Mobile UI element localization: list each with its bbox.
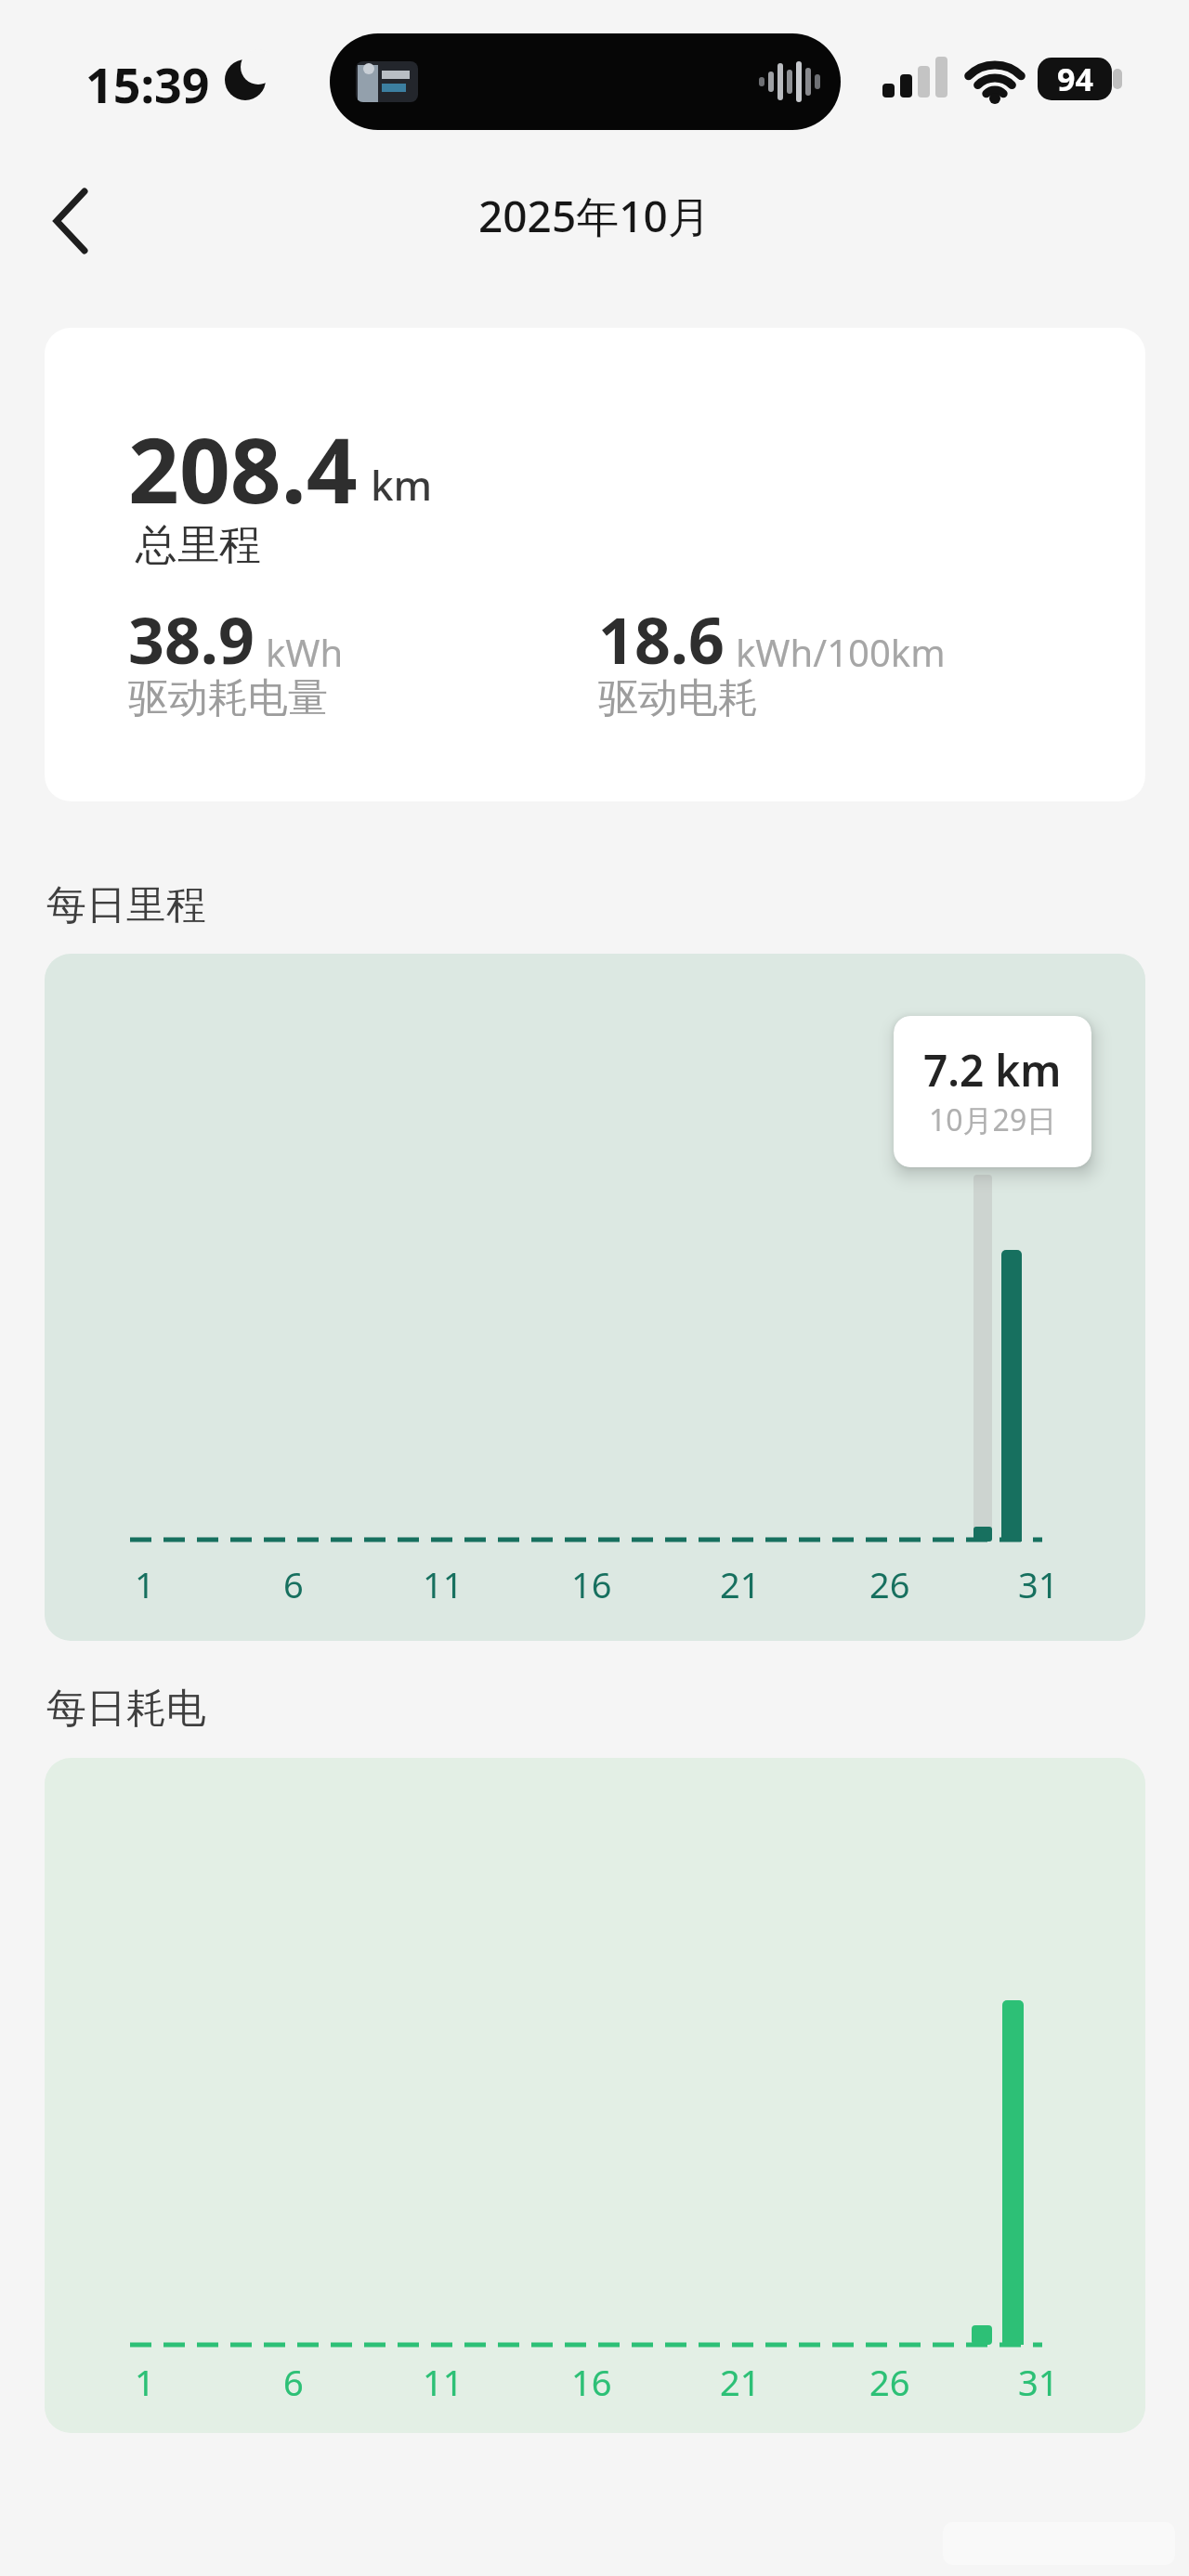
staticText: 总里程 <box>136 519 261 572</box>
staticText: 11 <box>423 2358 464 2406</box>
staticText: 驱动电耗 <box>598 673 758 723</box>
button[interactable]: 1 <box>45 954 1145 1641</box>
staticText: 6 <box>283 2358 304 2406</box>
staticText: 每日里程 <box>46 880 206 930</box>
button[interactable] <box>37 176 121 260</box>
button[interactable]: 1 <box>45 1758 1145 2433</box>
staticText: 2025年10月 <box>478 187 711 245</box>
staticText: 94 <box>1057 58 1093 100</box>
staticText: 每日耗电 <box>46 1684 206 1734</box>
staticText: 1 <box>135 2358 155 2406</box>
staticText: 31 <box>1018 2358 1059 2406</box>
staticText: 38.9 <box>128 596 255 683</box>
staticText: 18.6 <box>598 596 725 683</box>
staticText: 31 <box>1018 1560 1059 1608</box>
staticText: 7.2 km <box>923 1041 1062 1099</box>
staticText: 21 <box>720 2358 761 2406</box>
staticText: 15:39 <box>85 51 210 117</box>
staticText: 6 <box>283 1560 304 1608</box>
staticText: 26 <box>869 1560 910 1608</box>
staticText: 21 <box>720 1560 761 1608</box>
staticText: 208.4 <box>128 408 358 529</box>
staticText: 16 <box>571 1560 612 1608</box>
button[interactable]: 208.4 <box>45 328 1145 801</box>
staticText: 10月29日 <box>929 1099 1057 1140</box>
staticText: 11 <box>423 1560 464 1608</box>
staticText: 16 <box>571 2358 612 2406</box>
staticText: kWh <box>266 627 344 677</box>
staticText: kWh/100km <box>736 627 946 677</box>
staticText: 26 <box>869 2358 910 2406</box>
button[interactable] <box>330 33 841 130</box>
staticText: 1 <box>135 1560 155 1608</box>
staticText: 驱动耗电量 <box>128 673 328 723</box>
staticText: km <box>371 457 433 513</box>
